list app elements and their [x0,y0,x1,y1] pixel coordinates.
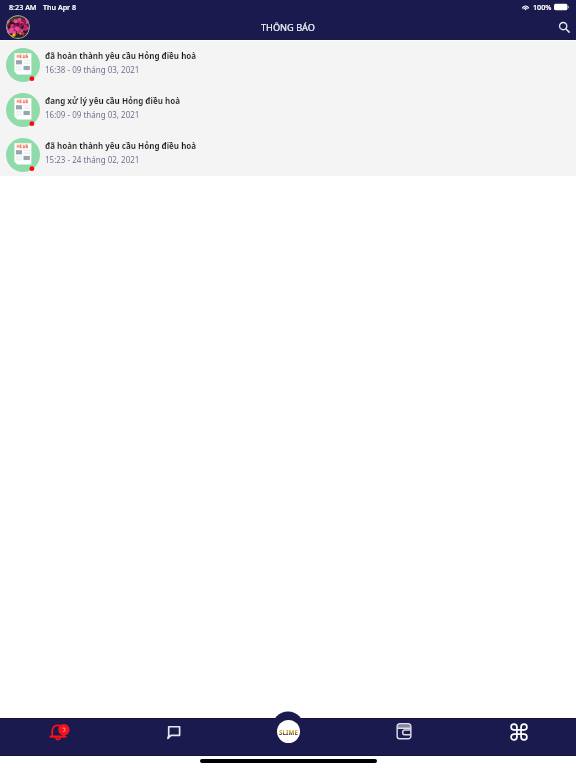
button[interactable]: đã hoàn thành yêu cầu Hỏng điều hoà [0,131,576,176]
staticText: đã hoàn thành yêu cầu Hỏng điều hoà [45,50,197,61]
staticText: THÔNG BÁO [261,21,315,34]
button[interactable]: Messages [116,718,231,745]
button[interactable]: Wallet [346,718,461,745]
staticText: SLIME [279,728,299,736]
button[interactable]: đang xử lý yêu cầu Hỏng điều hoà [0,86,576,131]
button[interactable]: SLIME [231,718,346,745]
staticText: 8:23 AM [9,2,37,12]
staticText: đã hoàn thành yêu cầu Hỏng điều hoà [45,140,197,151]
button[interactable]: Profile [6,15,30,39]
staticText: 100% [533,2,552,12]
button[interactable]: Search [553,16,575,38]
staticText: 15:23 - 24 tháng 02, 2021 [45,154,140,165]
staticText: 16:38 - 09 tháng 03, 2021 [45,64,140,75]
staticText: 16:09 - 09 tháng 03, 2021 [45,109,140,120]
staticText: đang xử lý yêu cầu Hỏng điều hoà [45,95,180,106]
button[interactable]: Notifications [0,718,116,745]
button[interactable]: Apps [461,718,576,745]
staticText: Thu Apr 8 [43,2,77,12]
button[interactable]: đã hoàn thành yêu cầu Hỏng điều hoà [0,41,576,86]
